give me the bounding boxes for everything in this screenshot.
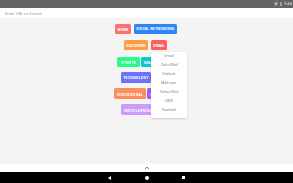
button[interactable]: Back bbox=[103, 172, 115, 183]
staticText: BLOGGING bbox=[126, 43, 146, 47]
staticText: Fastmail bbox=[162, 107, 177, 112]
button[interactable]: Home bbox=[141, 172, 153, 183]
button[interactable]: SHOPPING bbox=[147, 88, 173, 99]
staticText: NEWS bbox=[117, 27, 129, 32]
button[interactable]: Recent apps bbox=[177, 172, 189, 183]
button[interactable]: Yahoo Mail bbox=[151, 87, 187, 96]
staticText: EMAIL bbox=[153, 43, 165, 47]
staticText: Gmail bbox=[164, 53, 174, 58]
button[interactable]: SEARCH bbox=[141, 57, 162, 67]
staticText: SHOPPING bbox=[150, 92, 170, 96]
button[interactable]: EMAIL bbox=[151, 40, 167, 50]
staticText: EDUCATIONAL bbox=[117, 92, 143, 96]
button[interactable]: Outlook bbox=[151, 69, 187, 78]
staticText: TECHNOLOGY bbox=[123, 75, 149, 80]
staticText: SPORTS bbox=[121, 60, 136, 65]
button[interactable]: Zoho Mail bbox=[151, 60, 187, 69]
staticText: Outlook bbox=[162, 71, 176, 76]
button[interactable]: SOCIAL NETWORKING bbox=[134, 24, 177, 34]
staticText: SEARCH bbox=[144, 60, 159, 65]
staticText: SOCIAL NETWORKING bbox=[136, 27, 175, 31]
button[interactable]: BLOGGING bbox=[124, 40, 148, 50]
button[interactable]: TECHNOLOGY bbox=[121, 72, 151, 83]
button[interactable]: GMX bbox=[151, 96, 187, 105]
button[interactable]: ENCYCLOPEDIA bbox=[121, 104, 155, 115]
button[interactable]: SPORTS bbox=[117, 57, 140, 67]
staticText: Yahoo Mail bbox=[160, 89, 179, 94]
button[interactable]: Mail.com bbox=[151, 78, 187, 87]
button[interactable]: Gmail bbox=[151, 52, 187, 60]
staticText: Enter URL or Search bbox=[5, 11, 42, 16]
staticText: 7:44 bbox=[284, 1, 292, 6]
button[interactable]: EDUCATIONAL bbox=[114, 88, 146, 99]
button[interactable]: NEWS bbox=[115, 24, 131, 34]
staticText: ENCYCLOPEDIA bbox=[124, 108, 152, 112]
button[interactable]: Enter URL or Search bbox=[0, 8, 293, 18]
staticText: Mail.com bbox=[161, 80, 177, 85]
button[interactable]: Fastmail bbox=[151, 105, 187, 114]
staticText: GMX bbox=[165, 98, 173, 103]
staticText: Zoho Mail bbox=[161, 62, 178, 67]
